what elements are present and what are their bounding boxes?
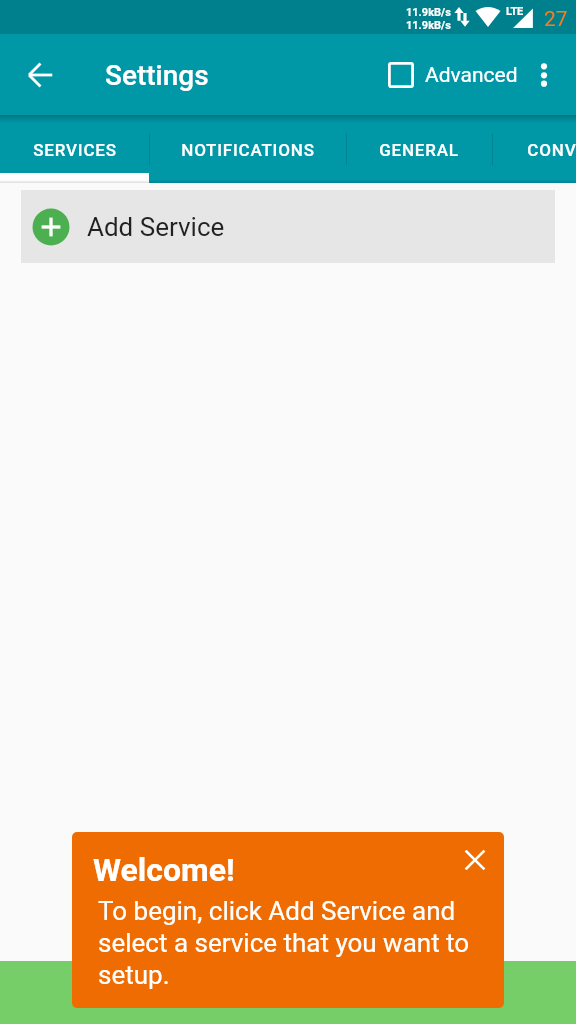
staticText: 11.9kB/s (406, 19, 451, 32)
button[interactable]: Close (455, 840, 495, 880)
staticText: Welcome! (93, 851, 235, 889)
staticText: 11.9kB/s (406, 6, 451, 19)
button[interactable]: GENERAL (346, 115, 492, 183)
staticText: 27 (544, 7, 568, 32)
staticText: CONVERSATIONS (527, 140, 576, 160)
staticText: GENERAL (379, 140, 459, 160)
staticText: Advanced (425, 63, 518, 88)
staticText: To begin, click Add Service and select a… (98, 896, 470, 991)
staticText: LTE (506, 5, 523, 18)
button[interactable]: CONVERSATIONS (492, 115, 576, 183)
staticText: SERVICES (33, 140, 117, 160)
staticText: NOTIFICATIONS (181, 140, 315, 160)
button[interactable]: Navigate up (18, 51, 66, 99)
staticText: Settings (105, 59, 209, 92)
button[interactable]: Advanced (377, 51, 518, 99)
button[interactable]: SERVICES (0, 115, 149, 183)
staticText: Add Service (87, 212, 225, 242)
button[interactable]: NOTIFICATIONS (149, 115, 346, 183)
button[interactable]: Add Service (21, 190, 555, 263)
button[interactable]: More options (522, 53, 566, 97)
